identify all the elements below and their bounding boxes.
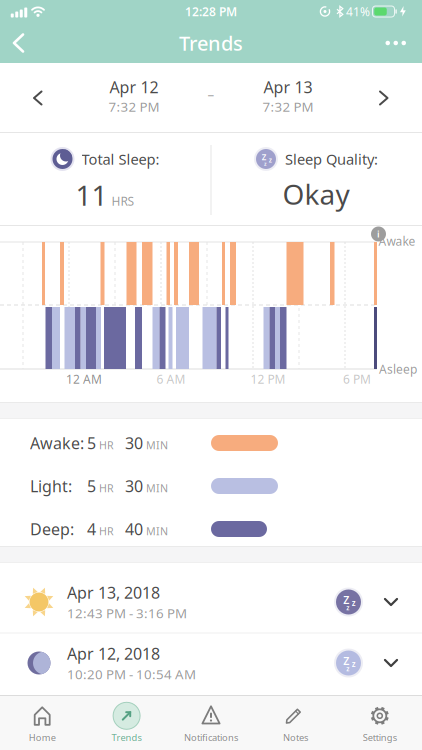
staticText: Awake (378, 233, 415, 249)
staticText: 30 (125, 475, 143, 497)
staticText: Apr 12 (109, 76, 158, 98)
staticText: Awake: (30, 432, 84, 454)
staticText: Z (343, 593, 349, 607)
staticText: 30 (125, 432, 143, 454)
staticText: 10:20 PM - 10:54 AM (67, 665, 196, 683)
staticText: 5 (87, 432, 96, 454)
staticText: Apr 13 (263, 76, 312, 98)
staticText: 12:28 PM (185, 3, 237, 19)
staticText: Trends (112, 731, 142, 744)
staticText: 7:32 PM (262, 98, 313, 115)
staticText: Trends (179, 30, 243, 56)
staticText: 4 (87, 518, 96, 540)
staticText: HR (99, 524, 114, 538)
button[interactable]: Previous day (0, 70, 43, 125)
staticText: z (346, 603, 349, 612)
staticText: Home (29, 731, 56, 744)
staticText: Asleep (379, 361, 417, 377)
staticText: 12 PM (250, 371, 285, 387)
staticText: Total Sleep: (81, 149, 159, 169)
button[interactable]: Notifications (169, 696, 253, 750)
staticText: HR (99, 481, 114, 495)
staticText: z (346, 664, 349, 673)
button[interactable]: Info (371, 226, 386, 241)
staticText: MIN (146, 438, 168, 452)
staticText: 12 AM (66, 371, 102, 387)
staticText: Deep: (30, 518, 74, 540)
staticText: 5 (87, 475, 96, 497)
staticText: Apr 13, 2018 (67, 582, 160, 603)
staticText: Notes (283, 731, 308, 744)
staticText: Light: (30, 475, 72, 497)
button[interactable]: Next day (379, 70, 422, 125)
button[interactable]: More (385, 27, 422, 59)
staticText: Apr 12, 2018 (67, 643, 160, 664)
button[interactable]: Home (0, 696, 84, 750)
staticText: MIN (146, 524, 168, 538)
staticText: – (207, 85, 214, 103)
staticText: 11 (75, 176, 107, 214)
staticText: z (264, 160, 267, 167)
staticText: z (352, 659, 356, 669)
staticText: z (352, 598, 356, 608)
staticText: z (269, 155, 272, 164)
staticText: i (377, 228, 380, 240)
staticText: HRS (111, 193, 134, 209)
button[interactable]: Apr 13, 2018 (0, 563, 422, 633)
staticText: Sleep Quality: (285, 149, 378, 169)
staticText: 41% (346, 3, 370, 19)
staticText: MIN (146, 481, 168, 495)
staticText: Z (262, 152, 267, 162)
staticText: Notifications (184, 731, 238, 744)
staticText: 6 AM (156, 371, 185, 387)
staticText: HR (99, 438, 114, 452)
staticText: Settings (363, 731, 397, 744)
button[interactable]: Trends (84, 696, 169, 750)
staticText: Z (343, 654, 349, 668)
button[interactable]: Notes (253, 696, 338, 750)
staticText: 40 (125, 518, 143, 540)
staticText: 6 PM (343, 371, 371, 387)
button[interactable]: Apr 12, 2018 (0, 633, 422, 695)
button[interactable]: Back (0, 23, 25, 62)
staticText: Okay (282, 175, 349, 213)
button[interactable]: Settings (338, 696, 422, 750)
staticText: 12:43 PM - 3:16 PM (67, 604, 187, 622)
staticText: 7:32 PM (108, 98, 159, 115)
